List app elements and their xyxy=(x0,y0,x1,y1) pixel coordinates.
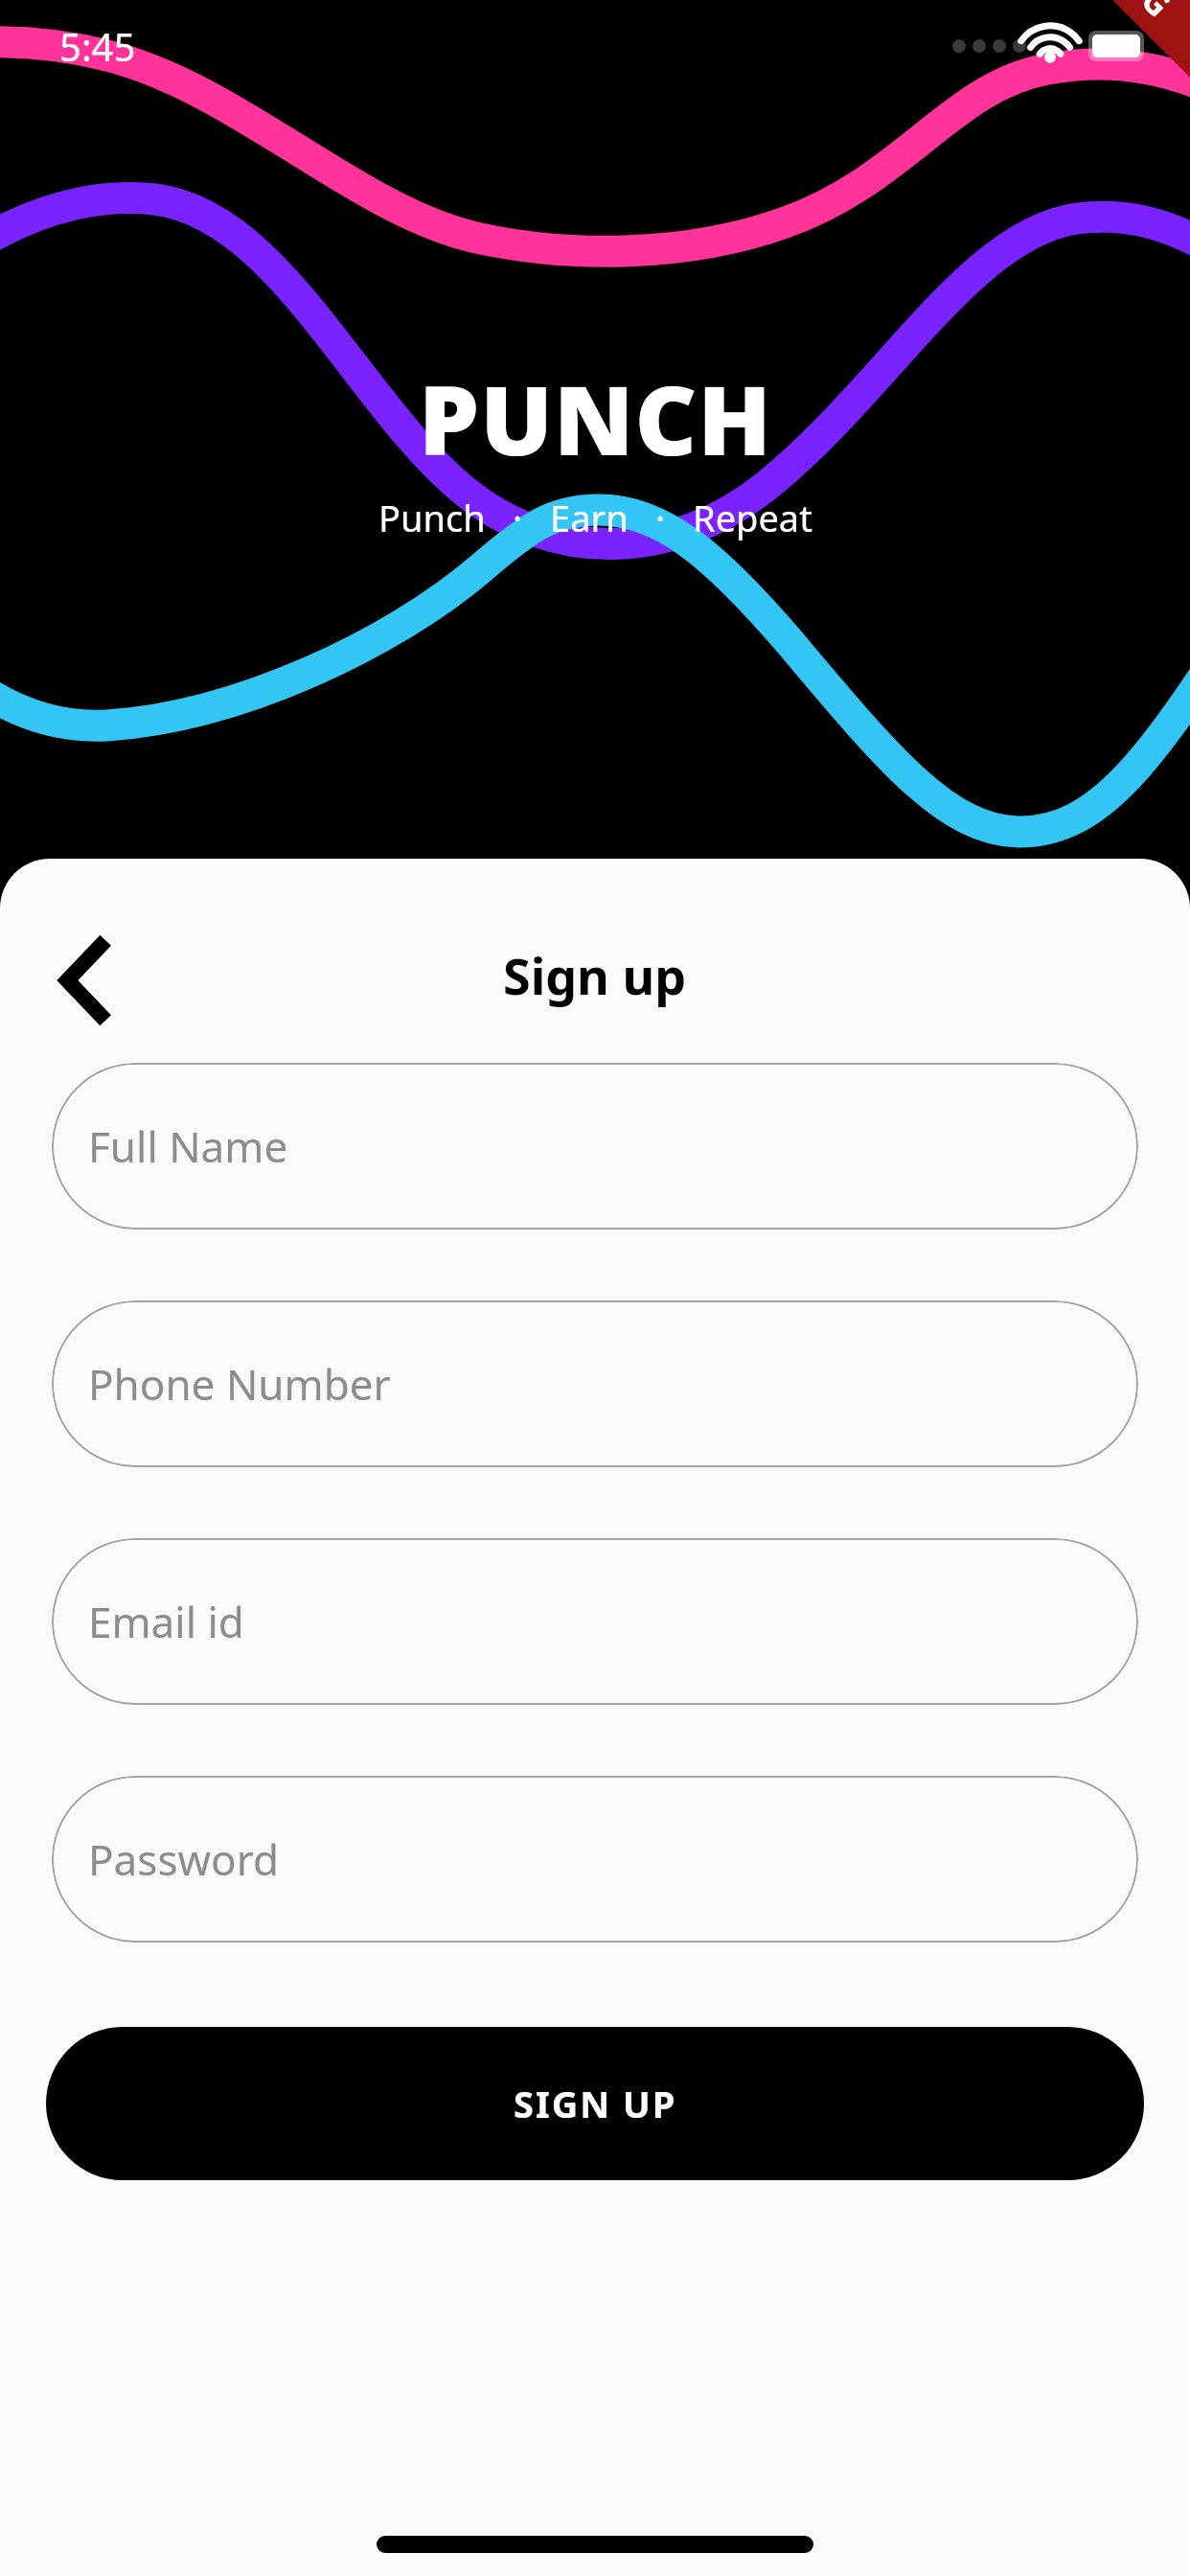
staticText: Phone Number xyxy=(88,1355,391,1413)
staticText: PUNCH xyxy=(419,353,772,483)
staticText: Email id xyxy=(88,1593,244,1650)
staticText: Password xyxy=(88,1830,280,1888)
button[interactable]: Email id xyxy=(52,1538,1138,1705)
staticText: DEBUG xyxy=(1070,0,1180,26)
staticText: Sign up xyxy=(503,941,687,1009)
button[interactable]: Password xyxy=(52,1776,1138,1943)
button[interactable]: Phone Number xyxy=(52,1300,1138,1467)
staticText: Punch xyxy=(378,493,486,542)
staticText: · xyxy=(513,493,523,542)
staticText: Full Name xyxy=(88,1117,288,1175)
button[interactable]: Back xyxy=(38,934,130,1026)
button[interactable]: SIGN UP xyxy=(46,2027,1144,2180)
staticText: 5:45 xyxy=(59,20,136,72)
staticText: Earn xyxy=(550,493,629,542)
button[interactable]: Full Name xyxy=(52,1063,1138,1230)
staticText: · xyxy=(655,493,666,542)
staticText: SIGN UP xyxy=(514,2079,677,2128)
staticText: Repeat xyxy=(693,493,812,542)
